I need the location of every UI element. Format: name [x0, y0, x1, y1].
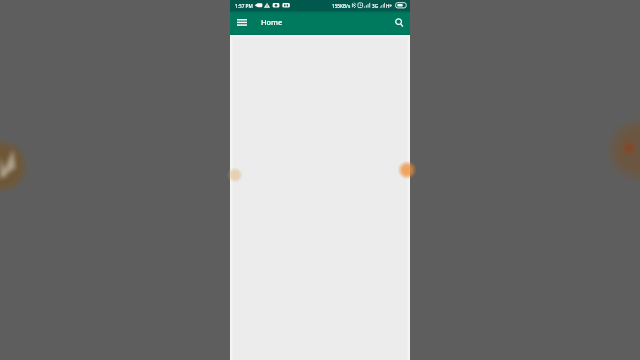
staticText: Home: [261, 17, 283, 27]
staticText: 155KB/s: [332, 3, 351, 9]
staticText: H+: [386, 3, 393, 9]
staticText: 1:57 PM: [235, 3, 253, 9]
staticText: 3G: [372, 3, 379, 9]
button[interactable]: Open navigation menu: [232, 11, 251, 35]
button[interactable]: Search: [388, 12, 410, 34]
